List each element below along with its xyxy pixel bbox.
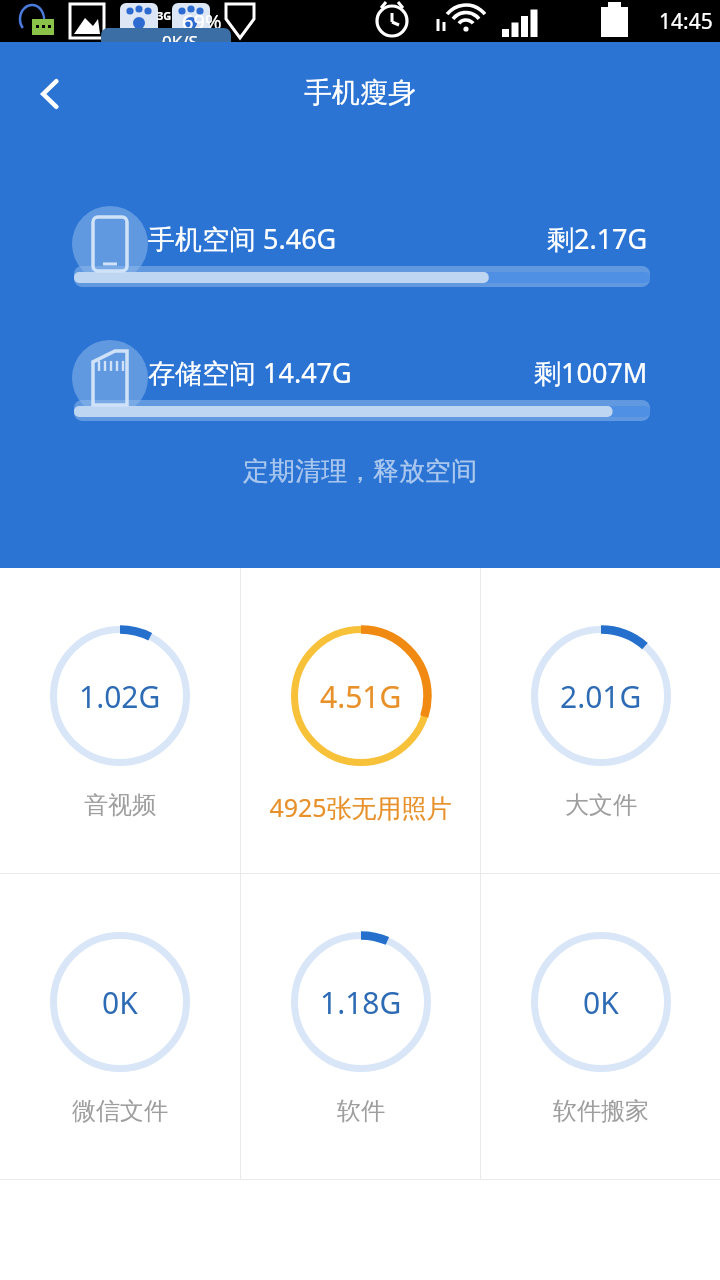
button[interactable]: 2.01G (481, 568, 720, 873)
staticText: 69% (182, 8, 222, 35)
staticText: 软件搬家 (553, 1096, 649, 1126)
staticText: 4.51G (320, 676, 402, 717)
button[interactable]: Back (14, 58, 86, 130)
staticText: 2.01G (560, 676, 642, 717)
staticText: 3G (157, 8, 172, 23)
button[interactable]: 0K (0, 874, 240, 1179)
button[interactable]: 1.18G (241, 874, 480, 1179)
staticText: 软件 (337, 1096, 385, 1126)
staticText: 存储空间 14.47G (148, 354, 352, 391)
staticText: 大文件 (565, 790, 637, 820)
staticText: 手机空间 5.46G (148, 220, 337, 257)
button[interactable]: 手机空间 5.46G (0, 210, 720, 296)
button[interactable]: 存储空间 14.47G (0, 344, 720, 430)
staticText: 1.02G (79, 676, 161, 717)
staticText: 4925张无用照片 (269, 790, 452, 824)
staticText: 1.18G (320, 982, 402, 1023)
staticText: 0K/S (162, 30, 198, 53)
staticText: 剩2.17G (547, 220, 648, 257)
button[interactable]: 4.51G (241, 568, 480, 873)
button[interactable]: 1.02G (0, 568, 240, 873)
staticText: 0K (583, 982, 619, 1023)
staticText: 14:45 (659, 7, 713, 36)
button[interactable]: 0K (481, 874, 720, 1179)
staticText: 微信文件 (72, 1096, 168, 1126)
staticText: 定期清理，释放空间 (243, 455, 477, 488)
staticText: 手机瘦身 (304, 75, 416, 110)
staticText: 剩1007M (534, 354, 648, 391)
staticText: 0K (102, 982, 138, 1023)
staticText: 音视频 (84, 790, 156, 820)
